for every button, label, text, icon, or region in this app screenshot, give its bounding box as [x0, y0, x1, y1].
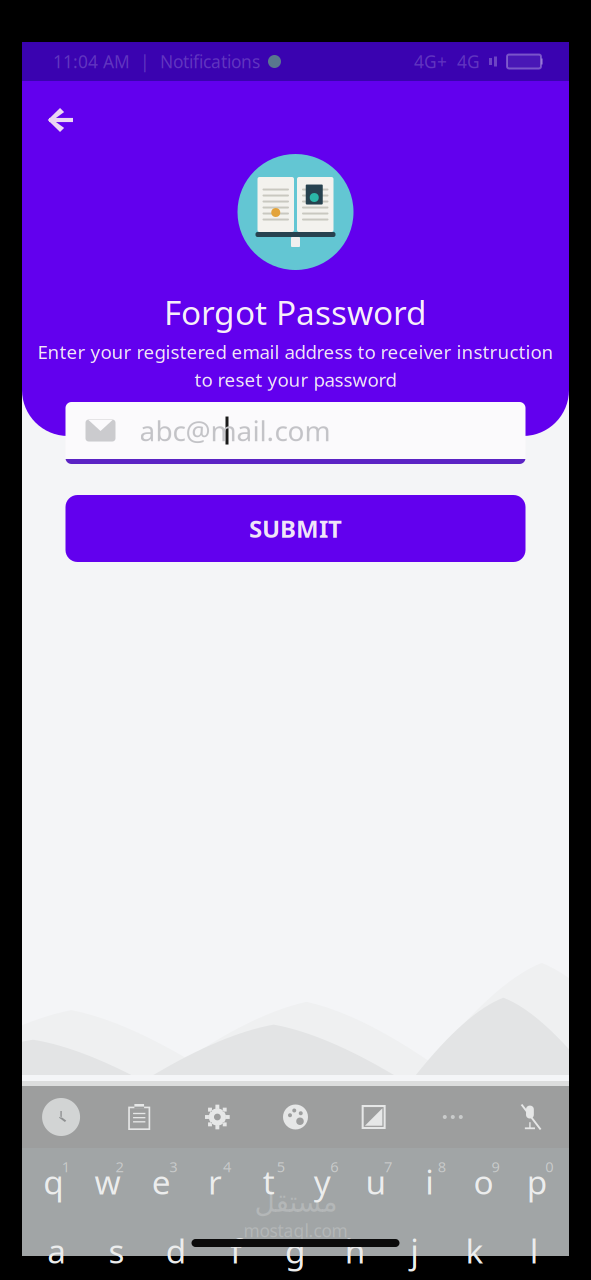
button[interactable]: g — [266, 1216, 325, 1280]
staticText: 11:04 AM | Notifications — [53, 50, 260, 73]
staticText: 7 — [384, 1157, 392, 1176]
staticText: 3 — [169, 1157, 177, 1176]
button[interactable]: a — [27, 1216, 87, 1280]
button[interactable]: d — [146, 1216, 206, 1280]
staticText: مستقل — [254, 1186, 337, 1218]
button[interactable]: l — [504, 1216, 564, 1280]
button[interactable]: Back — [37, 96, 85, 144]
button[interactable]: p — [510, 1147, 564, 1216]
staticText: y — [314, 1159, 331, 1204]
staticText: s — [108, 1228, 124, 1273]
staticText: 9 — [491, 1157, 499, 1176]
button[interactable]: o — [457, 1147, 510, 1216]
staticText: i — [425, 1159, 434, 1204]
button[interactable]: f — [206, 1216, 266, 1280]
staticText: r — [208, 1159, 222, 1204]
staticText: l — [530, 1228, 539, 1273]
button[interactable]: w — [81, 1147, 134, 1216]
staticText: e — [152, 1159, 171, 1204]
button[interactable]: Stickers — [335, 1086, 413, 1148]
staticText: f — [230, 1228, 241, 1273]
button[interactable]: k — [445, 1216, 504, 1280]
staticText: mostaql.com — [243, 1219, 347, 1242]
staticText: j — [410, 1228, 419, 1273]
staticText: 8 — [438, 1157, 446, 1176]
staticText: 5 — [277, 1157, 285, 1176]
button[interactable]: i — [403, 1147, 457, 1216]
staticText: 4G+ 4G — [414, 50, 480, 73]
button[interactable]: More — [413, 1086, 491, 1148]
button[interactable]: s — [87, 1216, 146, 1280]
staticText: Enter your registered email address to r… — [37, 339, 553, 364]
button[interactable]: SUBMIT — [65, 495, 525, 562]
button[interactable]: Clipboard — [100, 1086, 178, 1148]
staticText: q — [43, 1159, 64, 1204]
button[interactable]: r — [188, 1147, 242, 1216]
staticText: g — [285, 1228, 306, 1273]
button[interactable]: j — [385, 1216, 445, 1280]
button[interactable]: Theme — [256, 1086, 334, 1148]
staticText: 0 — [545, 1157, 553, 1176]
staticText: u — [366, 1159, 387, 1204]
button[interactable]: h — [325, 1216, 385, 1280]
staticText: h — [345, 1228, 366, 1273]
staticText: a — [47, 1228, 66, 1273]
button[interactable]: q — [27, 1147, 81, 1216]
button[interactable]: Recent — [22, 1086, 100, 1148]
staticText: t — [263, 1159, 275, 1204]
button[interactable]: Mute microphone — [491, 1086, 569, 1148]
button[interactable]: t — [242, 1147, 295, 1216]
button[interactable]: y — [295, 1147, 349, 1216]
button[interactable]: Settings — [178, 1086, 256, 1148]
staticText: 1 — [62, 1157, 70, 1176]
staticText: d — [166, 1228, 187, 1273]
staticText: 6 — [330, 1157, 338, 1176]
staticText: 2 — [116, 1157, 124, 1176]
staticText: 4 — [223, 1157, 231, 1176]
staticText: abc@mail.com — [139, 412, 330, 449]
button[interactable]: u — [349, 1147, 403, 1216]
staticText: SUBMIT — [249, 513, 342, 544]
staticText: k — [465, 1228, 483, 1273]
staticText: o — [473, 1159, 493, 1204]
staticText: to reset your password — [194, 367, 396, 392]
button[interactable]: e — [134, 1147, 188, 1216]
staticText: w — [95, 1159, 121, 1204]
staticText: Forgot Password — [164, 290, 427, 334]
staticText: p — [527, 1159, 548, 1204]
